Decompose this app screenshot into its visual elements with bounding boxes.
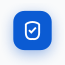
button[interactable]: Security <box>13 11 52 50</box>
